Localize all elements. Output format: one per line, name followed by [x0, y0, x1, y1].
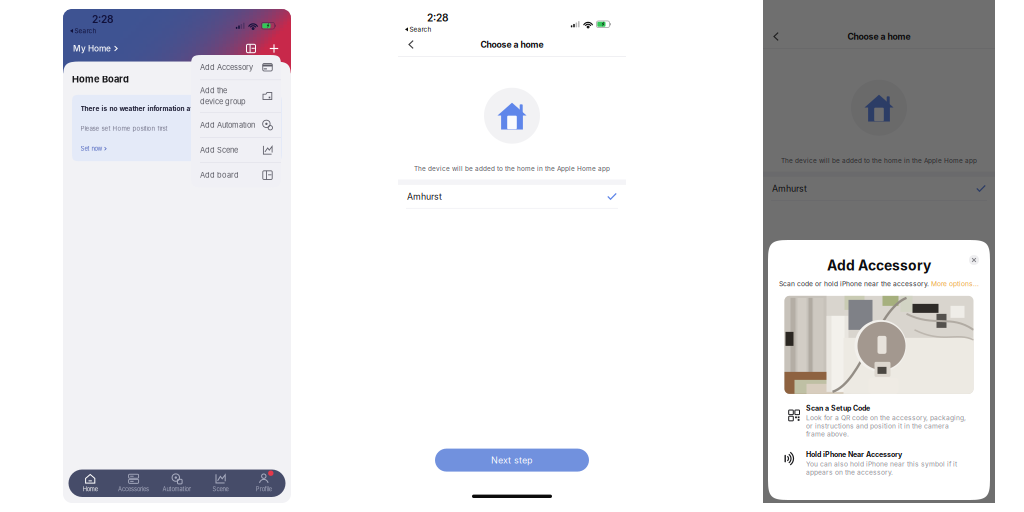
staticText: 2:28: [92, 13, 113, 25]
button[interactable]: Add Automation: [191, 113, 281, 137]
staticText: There is no weather information at: [80, 105, 192, 113]
staticText: Add Automation: [200, 120, 255, 129]
staticText: You can also hold iPhone near this symbo…: [806, 460, 957, 476]
staticText: Choose a home: [480, 39, 543, 50]
staticText: Add Scene: [200, 145, 238, 154]
staticText: Please set Home position first: [80, 125, 167, 132]
staticText: Home Board: [72, 73, 129, 85]
staticText: Look for a QR code on the accessory, pac…: [806, 414, 966, 438]
staticText: Home: [83, 486, 98, 493]
button[interactable]: Amhurst: [763, 177, 995, 200]
staticText: Add board: [200, 171, 239, 180]
staticText: Automation: [162, 486, 191, 493]
staticText: Amhurst: [772, 183, 807, 194]
button[interactable]: Amhurst: [398, 185, 626, 208]
button[interactable]: Add board: [191, 163, 281, 187]
button[interactable]: Set now: [80, 132, 107, 161]
button[interactable]: Scene: [199, 469, 242, 497]
staticText: Scan code or hold iPhone near the access…: [779, 280, 931, 288]
button[interactable]: Boards: [240, 36, 262, 60]
staticText: Choose a home: [847, 31, 910, 42]
staticText: Add Accessory: [827, 257, 931, 274]
staticText: Accessories: [118, 486, 149, 493]
staticText: device group: [200, 97, 246, 106]
staticText: Scene: [212, 486, 228, 493]
button[interactable]: Automation: [155, 469, 199, 497]
staticText: Hold iPhone Near Accessory: [806, 450, 902, 459]
button[interactable]: Add the: [191, 80, 281, 112]
staticText: Add Accessory: [200, 63, 253, 72]
staticText: Add the: [200, 86, 227, 95]
button[interactable]: Add Accessory: [191, 55, 281, 79]
staticText: Search: [410, 25, 432, 33]
button[interactable]: Next step: [435, 449, 589, 472]
staticText: 2:28: [427, 12, 448, 24]
button[interactable]: Home: [68, 469, 112, 497]
button[interactable]: Back: [398, 33, 424, 56]
staticText: Set now: [80, 145, 102, 152]
button[interactable]: Close: [965, 251, 983, 269]
button[interactable]: Accessories: [112, 469, 155, 497]
staticText: Next step: [491, 455, 533, 466]
staticText: My Home: [73, 43, 111, 53]
button[interactable]: Add Scene: [191, 138, 281, 162]
staticText: The device will be added to the home in …: [414, 165, 610, 172]
button[interactable]: Back: [763, 25, 789, 48]
staticText: Search: [75, 27, 97, 35]
button[interactable]: Profile: [242, 469, 285, 497]
staticText: More options...: [931, 280, 979, 288]
staticText: Amhurst: [407, 191, 442, 202]
staticText: Profile: [256, 486, 272, 493]
button[interactable]: Add: [262, 36, 286, 60]
button[interactable]: My Home: [63, 36, 124, 60]
staticText: The device will be added to the home in …: [781, 157, 977, 164]
staticText: Scan a Setup Code: [806, 404, 870, 412]
